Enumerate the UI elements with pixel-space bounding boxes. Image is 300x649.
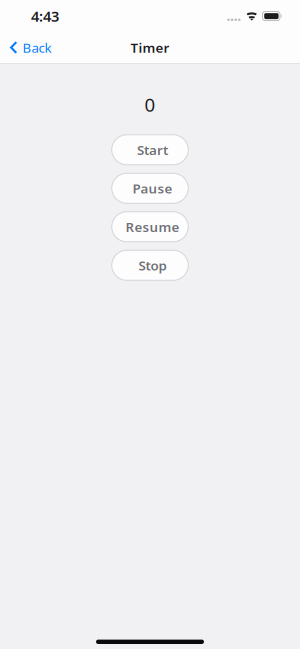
button[interactable]: Back [0,32,60,63]
staticText: 4:43 [31,6,59,26]
staticText: Stop [138,256,166,274]
button[interactable]: Stop [112,250,188,280]
button[interactable]: Start [112,135,188,165]
staticText: Start [137,141,168,159]
staticText: 0 [144,92,155,117]
staticText: Timer [130,39,169,56]
staticText: Pause [132,179,172,197]
staticText: Back [23,39,52,56]
button[interactable]: Resume [112,212,188,242]
button[interactable]: Pause [112,173,188,203]
staticText: Resume [125,218,179,236]
